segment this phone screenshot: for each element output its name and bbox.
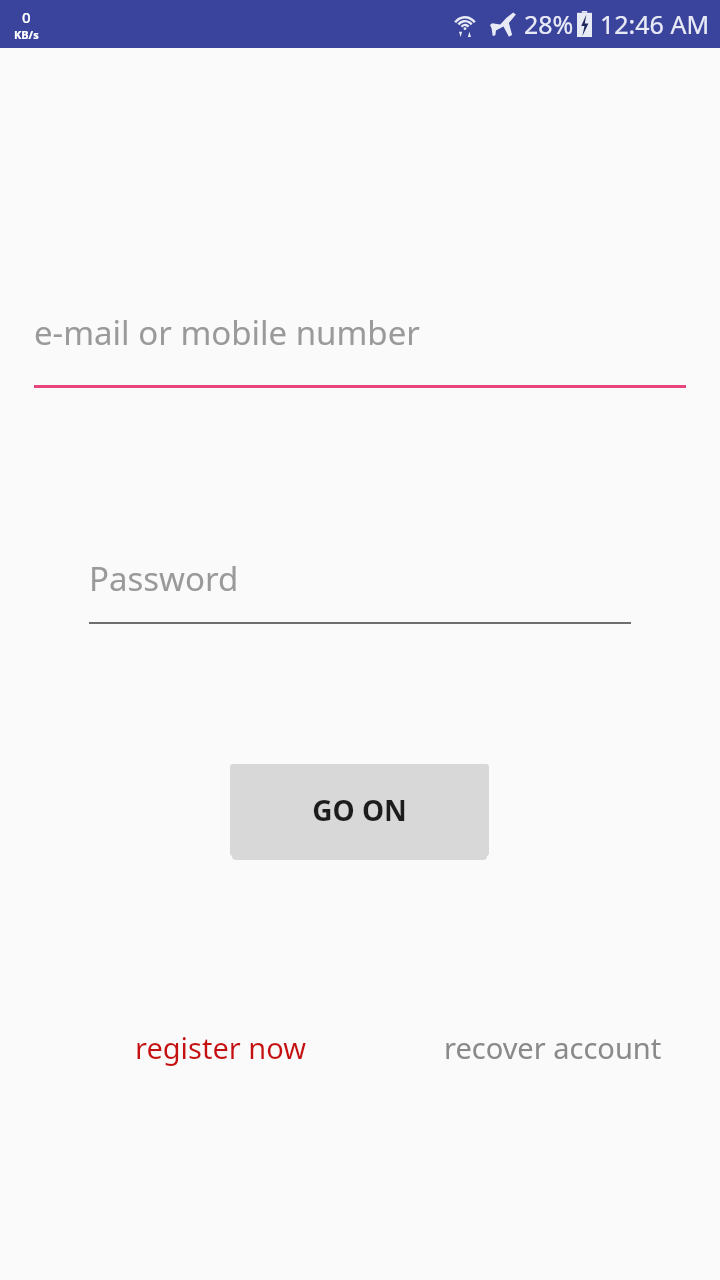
button[interactable]: recover account [432, 1018, 674, 1076]
button[interactable]: GO ON [230, 764, 489, 856]
button[interactable]: e-mail or mobile number [34, 310, 686, 388]
staticText: 12:46 AM [600, 7, 710, 41]
staticText: KB/s [14, 27, 39, 42]
button[interactable]: Password [89, 556, 631, 624]
staticText: 28% [524, 7, 574, 41]
button[interactable]: register now [120, 1018, 320, 1076]
staticText: e-mail or mobile number [34, 310, 420, 355]
staticText: GO ON [312, 791, 407, 829]
staticText: Password [89, 556, 239, 601]
staticText: 0 [22, 7, 31, 27]
staticText: register now [135, 1028, 306, 1067]
staticText: recover account [444, 1028, 662, 1067]
